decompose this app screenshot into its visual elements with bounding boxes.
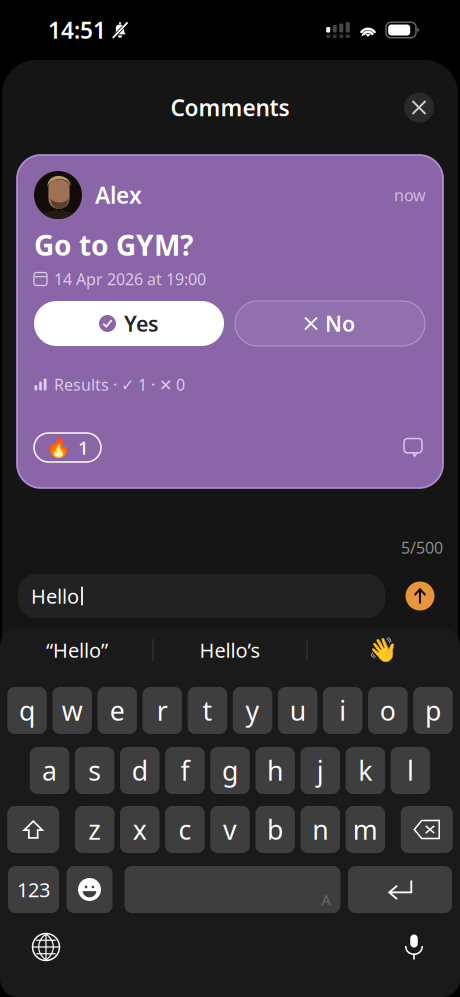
staticText: e [110, 693, 125, 728]
button[interactable]: o [368, 687, 408, 734]
button[interactable]: f [165, 747, 205, 794]
button[interactable]: y [233, 687, 272, 734]
staticText: 14:51 [48, 15, 106, 45]
button[interactable]: a [30, 747, 69, 794]
staticText: 5/500 [401, 537, 443, 558]
staticText: Alex [95, 180, 142, 210]
button[interactable]: x [120, 806, 160, 853]
staticText: a [42, 753, 57, 788]
staticText: n [312, 812, 328, 847]
button[interactable]: Hello [18, 574, 385, 618]
button[interactable]: p [413, 687, 453, 734]
button[interactable]: Next keyboard [25, 926, 67, 968]
button[interactable]: Return [348, 866, 452, 913]
button[interactable]: i [323, 687, 362, 734]
button[interactable]: v [210, 806, 250, 853]
button[interactable]: j [300, 747, 340, 794]
button[interactable]: e [97, 687, 137, 734]
staticText: Results · ✓ 1 · ✕ 0 [54, 374, 185, 395]
staticText: i [339, 693, 346, 728]
button[interactable]: Hello’s [153, 629, 306, 671]
staticText: p [425, 693, 441, 728]
staticText: f [180, 753, 189, 788]
button[interactable]: k [346, 747, 385, 794]
button[interactable]: Dictate [393, 926, 435, 968]
staticText: s [88, 753, 101, 788]
staticText: No [325, 309, 355, 338]
staticText: A [321, 890, 330, 909]
button[interactable]: space [124, 866, 340, 913]
staticText: “Hello” [46, 637, 108, 663]
button[interactable]: u [278, 687, 317, 734]
button[interactable]: h [255, 747, 295, 794]
staticText: 1 [78, 435, 89, 460]
button[interactable]: b [255, 806, 295, 853]
button[interactable]: 🔥 [34, 433, 101, 462]
button[interactable]: Send [403, 579, 437, 613]
button[interactable]: m [346, 806, 385, 853]
staticText: o [380, 693, 396, 728]
button[interactable]: q [7, 687, 47, 734]
staticText: now [394, 184, 426, 206]
button[interactable]: 👋 [307, 629, 458, 671]
button[interactable]: r [143, 687, 182, 734]
staticText: z [88, 812, 101, 847]
staticText: 123 [17, 876, 50, 903]
button[interactable]: c [165, 806, 205, 853]
button[interactable]: w [52, 687, 92, 734]
staticText: q [19, 693, 35, 728]
button[interactable]: Yes [34, 301, 224, 346]
staticText: j [317, 753, 324, 788]
staticText: m [353, 812, 378, 847]
staticText: Comments [170, 92, 289, 122]
staticText: t [202, 693, 212, 728]
button[interactable]: n [300, 806, 340, 853]
staticText: w [62, 693, 83, 728]
button[interactable]: Close [401, 89, 437, 125]
button[interactable]: g [210, 747, 250, 794]
button[interactable]: z [75, 806, 114, 853]
button[interactable]: s [75, 747, 114, 794]
button[interactable]: “Hello” [1, 629, 152, 671]
staticText: r [157, 693, 168, 728]
button[interactable]: Delete [401, 806, 453, 853]
staticText: k [358, 753, 372, 788]
staticText: l [407, 753, 414, 788]
button[interactable]: Shift [7, 806, 59, 853]
staticText: x [133, 812, 147, 847]
staticText: Hello’s [199, 637, 260, 663]
staticText: 🔥 [46, 436, 71, 459]
button[interactable]: 123 [8, 866, 59, 913]
staticText: b [267, 812, 283, 847]
button[interactable]: Emoji [66, 866, 112, 913]
staticText: Hello [31, 583, 79, 609]
staticText: 14 Apr 2026 at 19:00 [54, 268, 206, 290]
staticText: 👋 [368, 636, 398, 664]
button[interactable]: No [235, 301, 425, 346]
button[interactable]: Comments [400, 434, 426, 460]
staticText: u [290, 693, 306, 728]
staticText: y [246, 693, 260, 728]
button[interactable]: t [188, 687, 227, 734]
staticText: g [222, 753, 238, 788]
staticText: Go to GYM? [34, 226, 193, 264]
staticText: h [267, 753, 283, 788]
staticText: d [132, 753, 148, 788]
button[interactable]: d [120, 747, 159, 794]
button[interactable]: l [391, 747, 430, 794]
staticText: c [178, 812, 191, 847]
staticText: Yes [124, 309, 159, 338]
staticText: v [223, 812, 237, 847]
